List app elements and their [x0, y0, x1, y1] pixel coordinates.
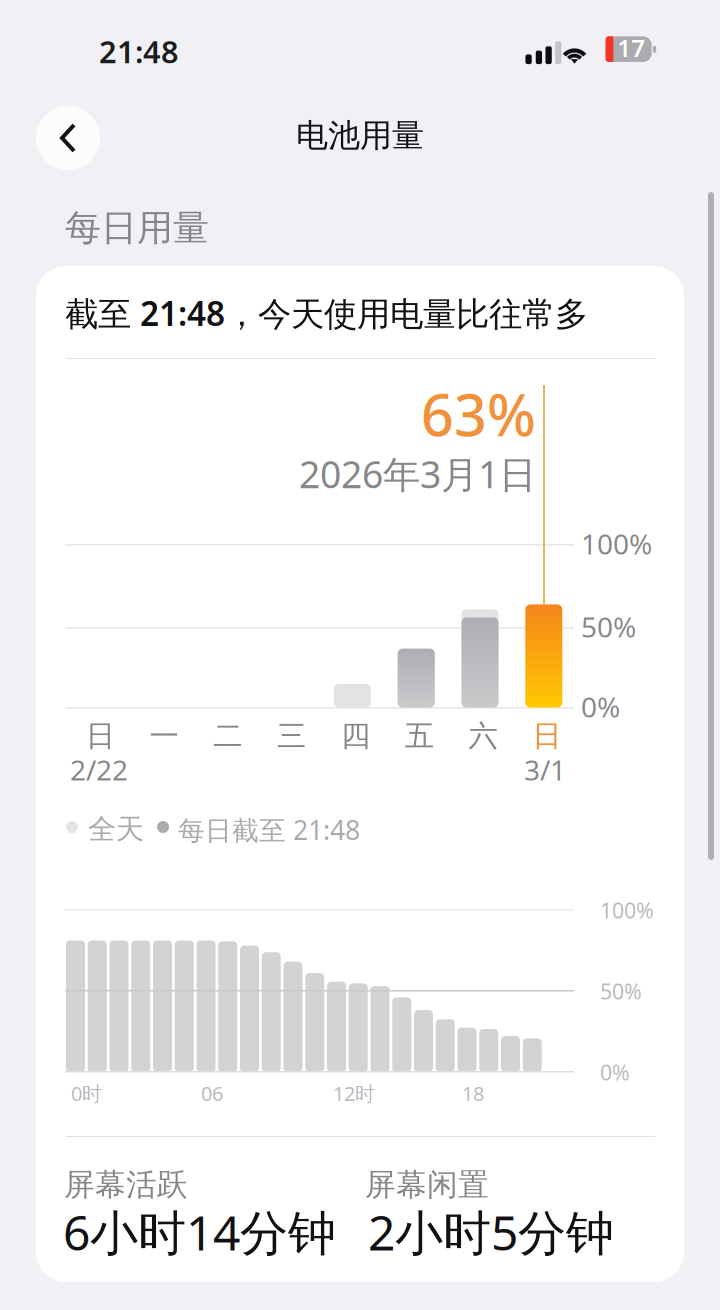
staticText: 2/22	[70, 751, 128, 788]
staticText: 18	[462, 1080, 484, 1107]
staticText: 06	[201, 1080, 223, 1107]
staticText: 50%	[581, 608, 636, 645]
staticText: 6小时14分钟	[63, 1200, 336, 1264]
staticText: 17	[617, 32, 645, 64]
staticText: 每日用量	[65, 206, 209, 250]
staticText: 全天	[88, 812, 144, 846]
staticText: 2026年3月1日	[299, 449, 536, 499]
staticText: 四	[341, 718, 370, 754]
staticText: 三	[277, 718, 306, 754]
staticText: 0%	[600, 1058, 630, 1086]
staticText: 12时	[333, 1080, 375, 1107]
staticText: 2小时5分钟	[368, 1200, 614, 1264]
staticText: 3/1	[524, 751, 566, 788]
staticText: 屏幕活跃	[64, 1166, 188, 1204]
staticText: 电池用量	[296, 116, 424, 155]
staticText: 0时	[71, 1080, 102, 1107]
staticText: 一	[149, 718, 178, 754]
staticText: 六	[468, 718, 497, 754]
staticText: 21:48	[99, 31, 179, 72]
button[interactable]: Back	[36, 106, 100, 170]
staticText: 100%	[600, 896, 654, 924]
staticText: 屏幕闲置	[365, 1166, 489, 1204]
staticText: 日	[532, 718, 561, 754]
staticText: 日	[86, 718, 115, 754]
staticText: 每日截至 21:48	[178, 812, 360, 847]
staticText: 二	[213, 718, 242, 754]
staticText: 63%	[421, 376, 536, 452]
staticText: 0%	[581, 688, 620, 725]
staticText: 五	[405, 718, 434, 754]
staticText: 截至 21:48，今天使用电量比往常多	[65, 291, 588, 335]
staticText: 100%	[581, 525, 652, 562]
staticText: 50%	[600, 977, 642, 1005]
